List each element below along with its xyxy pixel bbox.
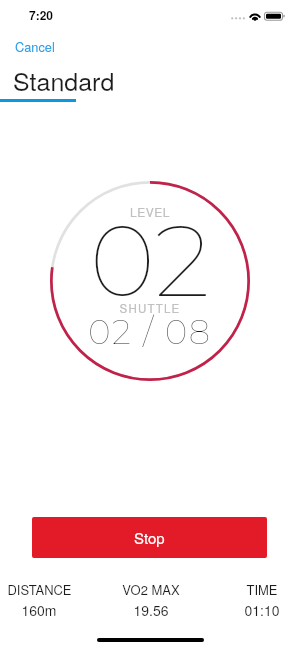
staticText: VO2 MAX bbox=[122, 580, 180, 599]
button[interactable]: Cancel bbox=[7, 33, 63, 59]
staticText: Stop bbox=[134, 527, 165, 548]
staticText: SHUTTLE bbox=[50, 300, 250, 316]
staticText: 02 bbox=[50, 199, 250, 321]
staticText: DISTANCE bbox=[7, 580, 72, 599]
staticText: Standard bbox=[13, 62, 115, 98]
staticText: 01:10 bbox=[244, 600, 280, 620]
staticText: LEVEL bbox=[50, 203, 250, 220]
button[interactable]: TIME bbox=[207, 580, 300, 620]
button[interactable]: Stop bbox=[32, 517, 267, 558]
staticText: TIME bbox=[246, 580, 278, 599]
staticText: Cancel bbox=[15, 37, 55, 55]
staticText: 160m bbox=[21, 600, 57, 620]
button[interactable]: VO2 MAX bbox=[96, 580, 206, 620]
staticText: 19.56 bbox=[133, 600, 169, 620]
staticText: 02 / 08 bbox=[50, 311, 250, 352]
button[interactable]: DISTANCE bbox=[0, 580, 94, 620]
staticText: 7:20 bbox=[29, 6, 54, 23]
